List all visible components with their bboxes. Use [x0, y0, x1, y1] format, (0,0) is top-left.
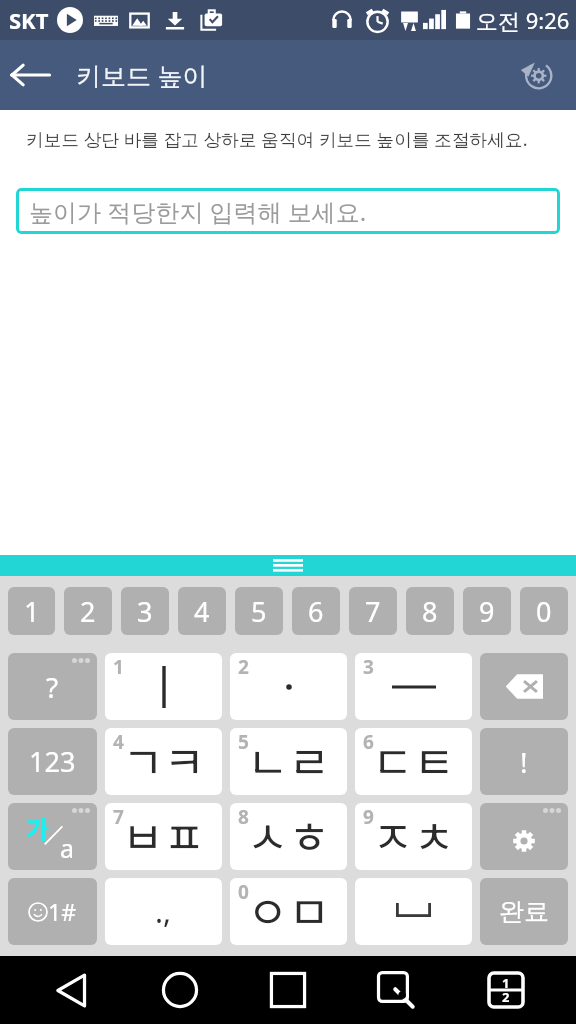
button[interactable]: 7: [105, 803, 222, 870]
staticText: .,: [155, 891, 172, 932]
staticText: 3: [137, 593, 153, 630]
button[interactable]: 6: [292, 587, 340, 635]
button[interactable]: [480, 803, 568, 870]
staticText: ㅂㅍ: [122, 803, 205, 867]
staticText: 7: [113, 804, 124, 830]
button[interactable]: 9: [355, 803, 472, 870]
staticText: a: [60, 831, 75, 865]
staticText: !: [520, 743, 528, 781]
button[interactable]: 3: [355, 653, 472, 720]
button[interactable]: 2: [64, 587, 112, 635]
staticText: ㅇㅁ: [247, 878, 330, 942]
staticText: 0: [536, 593, 552, 630]
button[interactable]: 가: [8, 803, 97, 870]
button[interactable]: .,: [105, 878, 222, 945]
button[interactable]: Capture screen: [369, 963, 423, 1017]
button[interactable]: [480, 653, 568, 720]
staticText: 2: [80, 593, 96, 630]
staticText: 4: [113, 729, 124, 755]
staticText: 1: [113, 654, 124, 680]
button[interactable]: 1: [8, 587, 55, 635]
button[interactable]: 1: [105, 653, 222, 720]
staticText: ?: [46, 668, 59, 706]
button[interactable]: 4: [178, 587, 226, 635]
staticText: 9: [363, 804, 374, 830]
staticText: 9: [479, 593, 495, 630]
staticText: 완료: [499, 896, 549, 927]
button[interactable]: 9: [463, 587, 511, 635]
button[interactable]: Split screen: [479, 963, 533, 1017]
staticText: 가: [26, 810, 50, 846]
staticText: 키보드 높이: [76, 58, 208, 92]
staticText: 8: [422, 593, 438, 630]
button[interactable]: Recent apps: [261, 963, 315, 1017]
staticText: 높이가 적당한지 입력해 보세요.: [29, 195, 367, 228]
button[interactable]: !: [480, 728, 568, 795]
staticText: 123: [29, 743, 76, 780]
staticText: 5: [251, 593, 267, 630]
staticText: ㅈㅊ: [372, 803, 455, 867]
staticText: 6: [308, 593, 324, 630]
staticText: ㄴㄹ: [247, 728, 330, 792]
button[interactable]: 4: [105, 728, 222, 795]
button[interactable]: 6: [355, 728, 472, 795]
staticText: 7: [365, 593, 381, 630]
button[interactable]: Reset settings: [510, 47, 566, 103]
staticText: SKT: [9, 5, 49, 35]
button[interactable]: 5: [235, 587, 283, 635]
staticText: ㄱㅋ: [122, 728, 205, 792]
button[interactable]: 2: [230, 653, 347, 720]
staticText: ㄷㅌ: [372, 728, 455, 792]
staticText: 3: [363, 654, 374, 680]
staticText: 1: [502, 974, 510, 992]
button[interactable]: Back: [0, 40, 60, 110]
button[interactable]: Home: [153, 963, 207, 1017]
button[interactable]: 0: [520, 587, 568, 635]
staticText: 키보드 상단 바를 잡고 상하로 움직여 키보드 높이를 조절하세요.: [26, 127, 528, 151]
button[interactable]: [355, 878, 472, 945]
button[interactable]: 5: [230, 728, 347, 795]
button[interactable]: Resize keyboard: [0, 555, 576, 576]
staticText: ㅅㅎ: [247, 803, 330, 867]
button[interactable]: ?: [8, 653, 97, 720]
staticText: 0: [238, 879, 249, 905]
staticText: 2: [238, 654, 249, 680]
button[interactable]: 3: [121, 587, 169, 635]
button[interactable]: 1#: [8, 878, 97, 945]
button[interactable]: 8: [230, 803, 347, 870]
button[interactable]: Back: [44, 963, 98, 1017]
button[interactable]: 완료: [480, 878, 568, 945]
staticText: 4: [194, 593, 210, 630]
staticText: 1: [24, 593, 40, 630]
staticText: 8: [238, 804, 249, 830]
staticText: 2: [502, 988, 510, 1006]
button[interactable]: 7: [349, 587, 397, 635]
staticText: 5: [238, 729, 249, 755]
button[interactable]: 8: [406, 587, 454, 635]
staticText: 1#: [48, 896, 77, 927]
staticText: 6: [363, 729, 374, 755]
staticText: 오전 9:26: [476, 5, 570, 35]
button[interactable]: 0: [230, 878, 347, 945]
button[interactable]: 123: [8, 728, 97, 795]
button[interactable]: 높이가 적당한지 입력해 보세요.: [16, 188, 560, 234]
